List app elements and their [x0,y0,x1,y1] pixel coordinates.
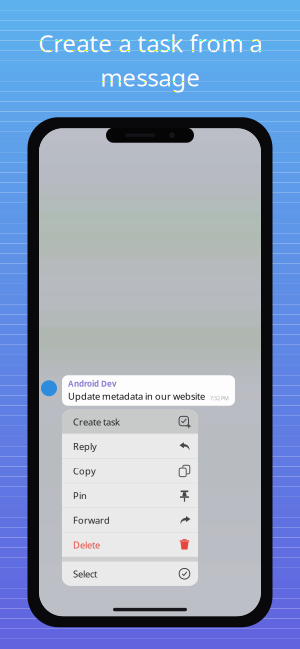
button[interactable]: Forward [62,508,198,532]
staticText: Forward [73,514,110,526]
button[interactable]: Reply [62,434,198,458]
staticText: Create a task from a message [38,27,262,93]
staticText: Create task [73,416,120,428]
staticText: Android Dev [68,378,117,389]
button[interactable]: Delete [62,533,198,557]
staticText: Pin [73,489,87,502]
button[interactable]: Create task [62,410,198,434]
staticText: Update metadata in our website [68,390,205,402]
staticText: Copy [73,465,96,477]
button[interactable]: Pin [62,484,198,508]
staticText: 7:32 PM [210,395,229,402]
staticText: Select [73,568,97,580]
button[interactable]: Select [62,562,198,586]
button[interactable]: Copy [62,459,198,483]
staticText: Delete [73,539,100,551]
staticText: Reply [73,440,97,453]
